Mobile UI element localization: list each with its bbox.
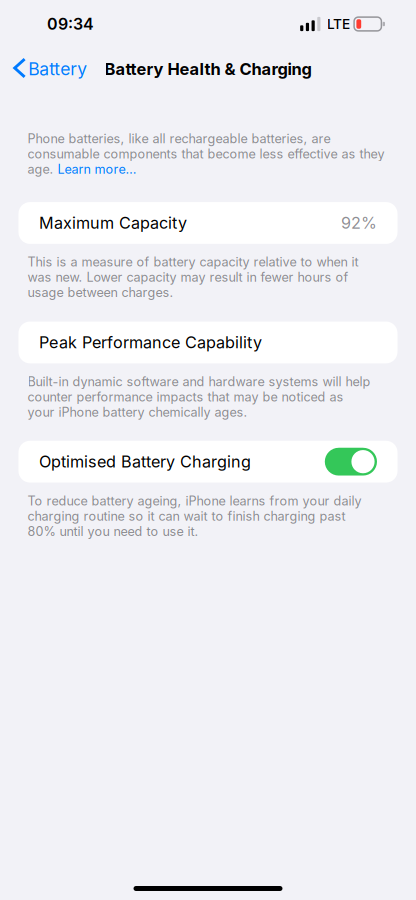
staticText: age.: [27, 161, 57, 177]
staticText: Built-in dynamic software and hardware s…: [27, 374, 370, 420]
staticText: Optimised Battery Charging: [39, 452, 251, 471]
staticText: Battery Health & Charging: [104, 59, 311, 79]
staticText: Learn more…: [57, 161, 136, 177]
staticText: 09:34: [47, 14, 94, 34]
staticText: Phone batteries, like all rechargeable b…: [27, 131, 384, 161]
staticText: 92%: [341, 213, 377, 233]
staticText: Battery: [28, 58, 87, 80]
staticText: To reduce battery ageing, iPhone learns …: [27, 493, 361, 539]
staticText: Maximum Capacity: [39, 213, 187, 233]
staticText: This is a measure of battery capacity re…: [27, 254, 358, 300]
button[interactable]: Maximum Capacity: [18, 202, 397, 244]
staticText: LTE: [327, 16, 350, 32]
button[interactable]: Learn more…: [57, 161, 136, 177]
button[interactable]: Peak Performance Capability: [18, 322, 397, 363]
button[interactable]: Battery: [0, 49, 95, 89]
button[interactable]: Optimised Battery Charging: [18, 441, 397, 483]
staticText: Peak Performance Capability: [39, 333, 262, 352]
